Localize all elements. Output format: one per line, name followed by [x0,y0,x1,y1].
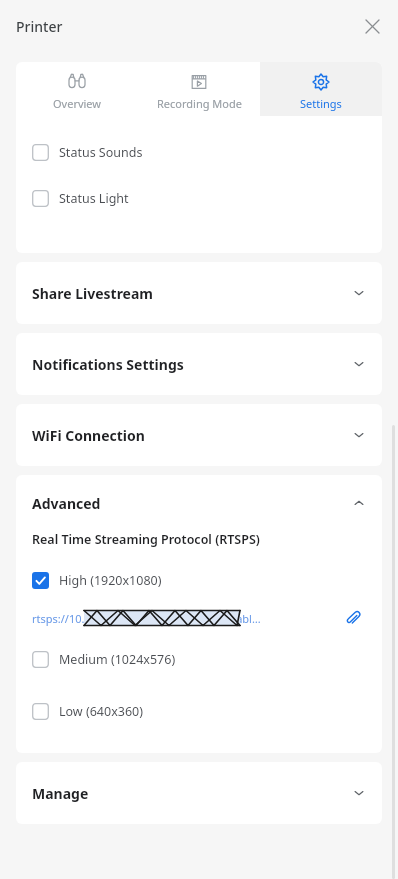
button[interactable]: rtsps://10.1.xxxxxxxxxxxxxxxxxii2Mf?enab… [16,605,382,631]
button[interactable]: Manage [16,762,382,824]
button[interactable]: Recording Mode [138,62,260,116]
button[interactable]: WiFi Connection [16,404,382,466]
staticText: Real Time Streaming Protocol (RTSPS) [32,531,260,548]
button[interactable]: Close [356,10,388,42]
staticText: Overview [53,96,101,111]
button[interactable]: Advanced [16,475,382,531]
button[interactable]: Settings [260,62,382,116]
staticText: rtsps://10.1.xxxxxxxxxxxxxxxxxii2Mf?enab… [32,611,261,626]
staticText: WiFi Connection [32,426,145,445]
button[interactable]: Copy link [340,605,366,631]
button[interactable]: Status Light [16,186,382,210]
staticText: High (1920x1080) [59,572,162,589]
staticText: Manage [32,784,89,803]
button[interactable]: High (1920x1080) [16,568,382,592]
staticText: Low (640x360) [59,703,143,720]
staticText: Status Sounds [59,144,143,161]
staticText: Advanced [32,494,101,513]
staticText: Medium (1024x576) [59,651,176,668]
button[interactable]: Low (640x360) [16,699,382,723]
staticText: Recording Mode [157,96,242,111]
staticText: Settings [300,96,342,111]
staticText: Share Livestream [32,284,154,303]
button[interactable]: Overview [16,62,138,116]
button[interactable]: Medium (1024x576) [16,647,382,671]
staticText: Notifications Settings [32,355,184,374]
button[interactable]: Status Sounds [16,140,382,164]
staticText: Printer [16,17,63,36]
button[interactable]: Share Livestream [16,262,382,324]
button[interactable]: Notifications Settings [16,333,382,395]
staticText: Status Light [59,190,129,207]
